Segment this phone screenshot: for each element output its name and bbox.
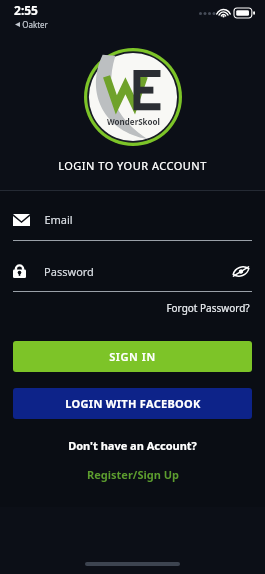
button[interactable]: Email [13, 210, 252, 229]
staticText: Oakter [22, 19, 48, 30]
staticText: LOGIN TO YOUR ACCOUNT [58, 158, 207, 173]
staticText: Forgot Password? [166, 301, 250, 315]
button[interactable]: LOGIN WITH FACEBOOK [13, 388, 252, 419]
staticText: Register/Sign Up [87, 467, 179, 482]
staticText: SIGN IN [109, 349, 156, 364]
staticText: Password [44, 264, 94, 279]
button[interactable]: Show password [230, 260, 252, 282]
staticText: Don't have an Account? [68, 438, 197, 453]
button[interactable]: Register/Sign Up [81, 464, 185, 485]
staticText: WonderSkool [107, 116, 160, 127]
staticText: LOGIN WITH FACEBOOK [65, 396, 201, 411]
staticText: Email [44, 212, 73, 227]
staticText: 2:55 [14, 2, 38, 18]
button[interactable]: Forgot Password? [164, 298, 252, 318]
button[interactable]: SIGN IN [13, 341, 252, 372]
button[interactable]: Password [13, 258, 252, 284]
